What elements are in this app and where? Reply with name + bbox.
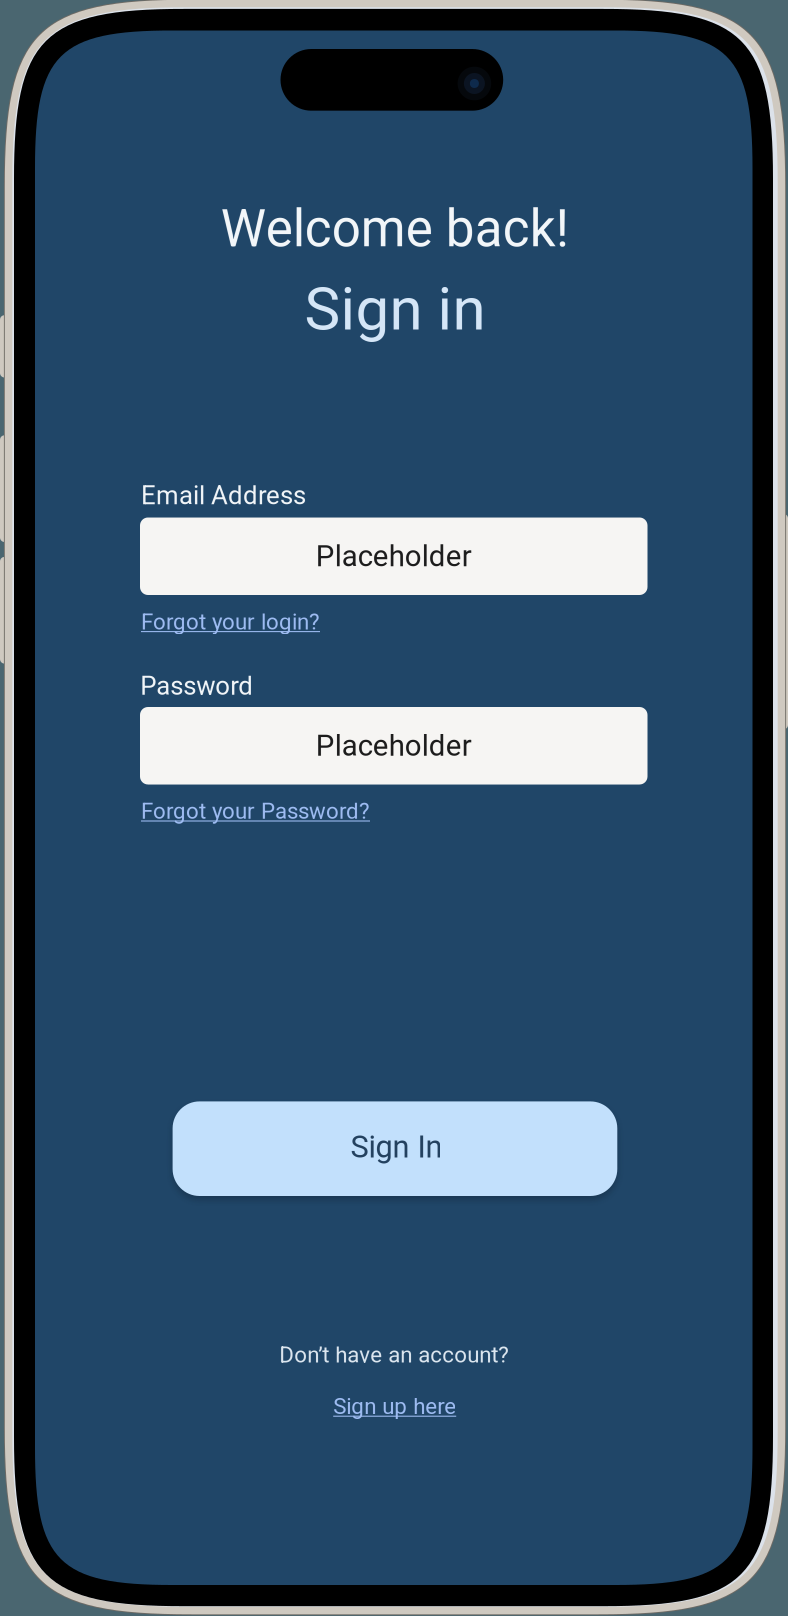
staticText: Sign in	[304, 274, 485, 344]
button[interactable]: Sign In	[173, 1101, 617, 1196]
button[interactable]: Email Address	[140, 517, 647, 595]
staticText: Email Address	[141, 480, 306, 510]
staticText: Sign In	[350, 1129, 442, 1165]
button[interactable]: Sign up here	[333, 1393, 458, 1419]
staticText: Forgot your login?	[141, 609, 320, 635]
button[interactable]: Forgot your login?	[141, 609, 324, 635]
staticText: Sign up here	[333, 1393, 456, 1419]
staticText: Forgot your Password?	[141, 798, 370, 824]
staticText: Welcome back!	[221, 199, 569, 259]
button[interactable]: Password	[140, 707, 647, 784]
staticText: Password	[140, 671, 253, 701]
button[interactable]: Forgot your Password?	[141, 798, 375, 824]
staticText: Placeholder	[316, 729, 472, 763]
staticText: Don’t have an account?	[279, 1342, 509, 1368]
staticText: Placeholder	[316, 539, 472, 573]
